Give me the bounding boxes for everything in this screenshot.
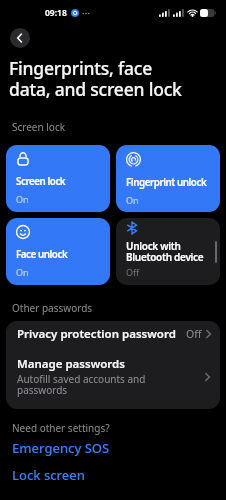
staticText: Manage passwords — [17, 356, 125, 372]
button[interactable] — [10, 28, 30, 48]
staticText: Off — [126, 266, 140, 278]
staticText: Face unlock — [16, 248, 68, 261]
button[interactable]: Fingerprint unlock — [116, 145, 220, 212]
button[interactable]: Manage passwords — [6, 347, 220, 409]
staticText: Screen lock — [12, 120, 66, 134]
staticText: Privacy protection password — [17, 326, 176, 342]
staticText: Unlock with Bluetooth device — [126, 239, 204, 264]
staticText: On — [16, 266, 29, 278]
staticText: Off — [186, 327, 202, 341]
button[interactable]: Emergency SOS — [12, 439, 110, 457]
button[interactable]: Privacy protection password — [6, 321, 220, 347]
button[interactable]: Unlock with Bluetooth device — [116, 218, 220, 285]
staticText: Fingerprints, face data, and screen lock — [9, 56, 182, 101]
staticText: Need other settings? — [12, 421, 110, 435]
button[interactable]: Lock screen — [12, 466, 85, 484]
staticText: 09:18 — [45, 7, 67, 19]
staticText: Fingerprint unlock — [126, 176, 207, 189]
staticText: On — [16, 193, 29, 205]
staticText: On — [126, 194, 139, 206]
staticText: Autofill saved accounts and passwords — [17, 372, 146, 397]
staticText: Screen lock — [16, 175, 66, 188]
button[interactable]: Screen lock — [6, 145, 110, 212]
button[interactable]: Face unlock — [6, 218, 110, 285]
staticText: Other passwords — [12, 301, 93, 315]
